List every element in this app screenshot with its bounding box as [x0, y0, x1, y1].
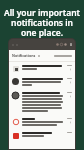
button[interactable] [9, 89, 75, 115]
staticText: Notifications [12, 53, 36, 58]
button[interactable] [9, 62, 75, 75]
button[interactable] [9, 129, 75, 142]
button[interactable] [9, 75, 75, 89]
staticText: All your important notifications in one … [0, 7, 84, 39]
button[interactable]: Notifications [9, 50, 75, 61]
button[interactable] [9, 115, 75, 129]
